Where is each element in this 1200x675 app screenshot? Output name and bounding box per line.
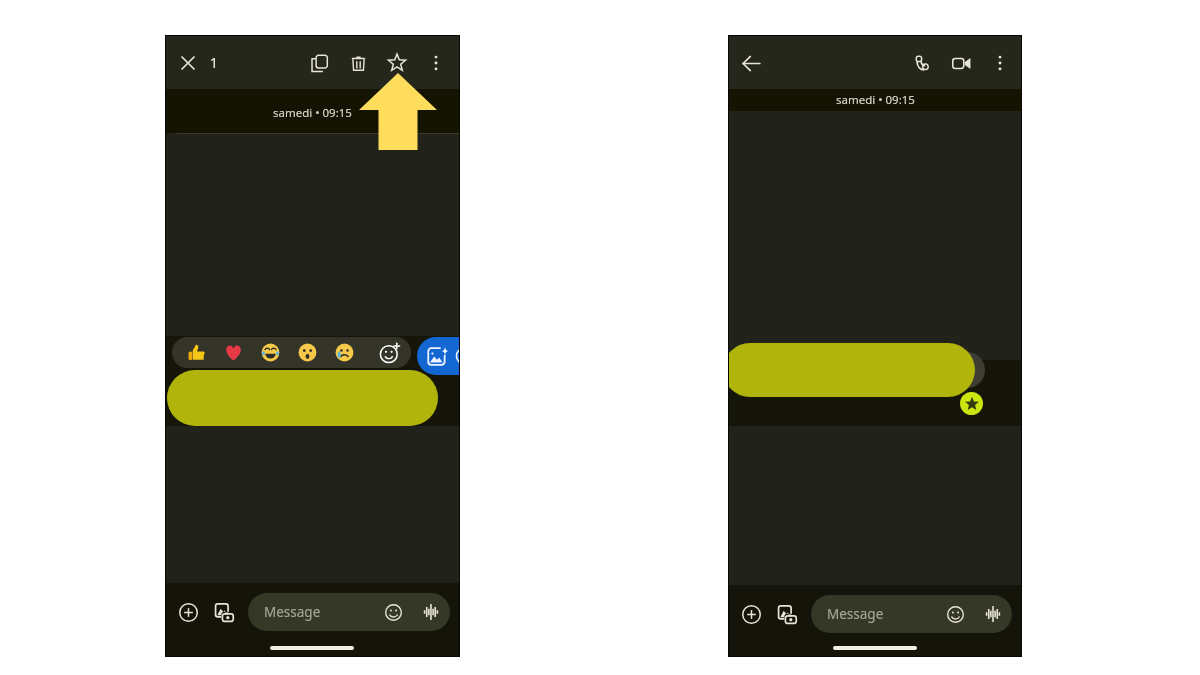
button[interactable]: Video call	[946, 48, 976, 78]
button[interactable]: Star	[382, 48, 412, 78]
button[interactable]: Copy	[304, 48, 334, 78]
button[interactable]: Message	[811, 595, 1012, 633]
button[interactable]: Call	[907, 48, 937, 78]
button[interactable]: Close selection	[174, 49, 202, 77]
button[interactable]: Voice message	[417, 598, 445, 626]
button[interactable]: Add image	[417, 337, 459, 375]
staticText: Message	[264, 603, 321, 621]
button[interactable]: Message	[248, 593, 450, 631]
button[interactable]: Starred message	[960, 392, 983, 415]
button[interactable]: Gallery	[773, 600, 801, 628]
button[interactable]: Voice message	[979, 600, 1007, 628]
button[interactable]: Reactions	[172, 337, 411, 368]
button[interactable]: Back	[736, 48, 766, 78]
button[interactable]: Delete	[343, 48, 373, 78]
button[interactable]: Emoji	[941, 600, 969, 628]
button[interactable]: Gallery	[210, 598, 238, 626]
button[interactable]: Emoji	[379, 598, 407, 626]
button[interactable]: Selected message	[167, 370, 438, 426]
button[interactable]: More options	[421, 48, 451, 78]
staticText: samedi • 09:15	[273, 105, 352, 121]
staticText: samedi • 09:15	[836, 92, 915, 108]
button[interactable]: More options	[985, 48, 1015, 78]
button[interactable]: Message	[729, 343, 975, 397]
button[interactable]: Add attachment	[737, 600, 765, 628]
staticText: Message	[827, 605, 884, 623]
staticText: 1	[210, 53, 219, 72]
button[interactable]: Add attachment	[174, 598, 202, 626]
